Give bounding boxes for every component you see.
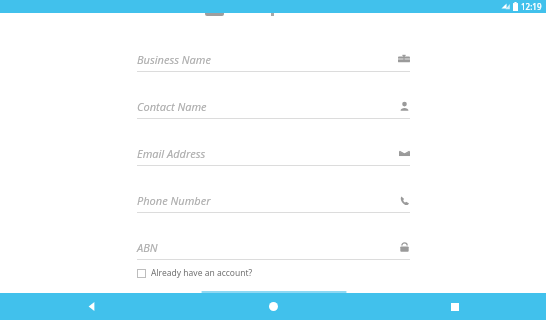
button[interactable]: Already have an account? xyxy=(137,265,253,281)
staticText: ABN xyxy=(137,240,399,255)
button[interactable]: Recent apps xyxy=(364,293,546,320)
button[interactable]: Email Address xyxy=(137,141,410,166)
staticText: Contact Name xyxy=(137,99,399,114)
button[interactable]: Contact Name xyxy=(137,94,410,119)
staticText: 12:19 xyxy=(521,1,542,12)
staticText: Business Name xyxy=(137,52,398,67)
button[interactable]: Business Name xyxy=(137,47,410,72)
staticText: Phone Number xyxy=(137,193,399,208)
staticText: Email Address xyxy=(137,146,399,161)
button[interactable]: REGISTER xyxy=(201,291,347,293)
button[interactable]: Home xyxy=(182,293,364,320)
button[interactable]: Phone Number xyxy=(137,188,410,213)
button[interactable]: Back xyxy=(0,293,182,320)
staticText: Already have an account? xyxy=(151,267,253,279)
button[interactable]: ABN xyxy=(137,235,410,260)
